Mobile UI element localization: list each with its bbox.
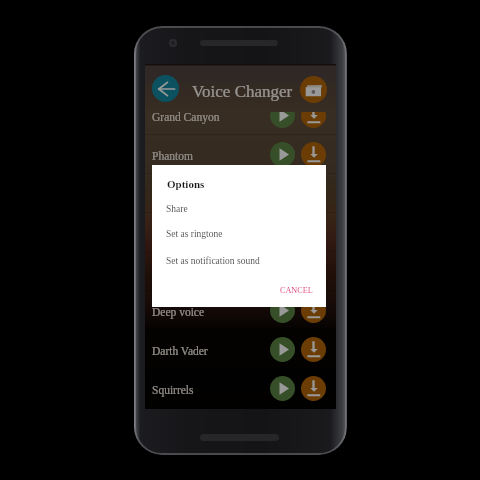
staticText: Set as notification sound xyxy=(166,256,260,267)
button[interactable]: Helium xyxy=(145,213,336,252)
button[interactable]: Set as notification sound xyxy=(152,253,326,269)
staticText: Options xyxy=(167,178,205,190)
button[interactable]: Squirrels xyxy=(145,369,336,408)
button[interactable]: Saved recordings xyxy=(300,76,327,103)
button[interactable]: Grand Canyon xyxy=(145,96,336,135)
staticText: Voice Changer xyxy=(192,82,293,101)
button[interactable]: Share xyxy=(152,201,326,217)
button[interactable]: Set as ringtone xyxy=(152,226,326,242)
staticText: Deep voice xyxy=(152,306,205,319)
staticText: Robot xyxy=(152,189,181,202)
button[interactable]: Robot xyxy=(145,174,336,213)
button[interactable]: Download Phantom xyxy=(301,142,326,167)
button[interactable]: Play Squirrels xyxy=(270,376,295,401)
staticText: Set as ringtone xyxy=(166,229,223,240)
button[interactable]: Download Deep voice xyxy=(301,298,326,323)
button[interactable]: Phantom xyxy=(145,135,336,174)
staticText: Helium xyxy=(152,228,187,241)
button[interactable]: Play Grand Canyon xyxy=(270,103,295,128)
staticText: CANCEL xyxy=(280,286,313,295)
button[interactable]: Play Darth Vader xyxy=(270,337,295,362)
button[interactable]: Darth Vader xyxy=(145,330,336,369)
button[interactable]: Download Darth Vader xyxy=(301,337,326,362)
button[interactable]: Play Deep voice xyxy=(270,298,295,323)
button[interactable]: Download Grand Canyon xyxy=(301,103,326,128)
staticText: Darth Vader xyxy=(152,345,208,358)
button[interactable]: CANCEL xyxy=(269,282,313,298)
staticText: Grand Canyon xyxy=(152,111,220,124)
staticText: Share xyxy=(166,204,188,215)
staticText: Squirrels xyxy=(152,384,194,397)
button[interactable]: Back xyxy=(152,75,179,102)
staticText: Phantom xyxy=(152,150,193,163)
button[interactable]: Download Squirrels xyxy=(301,376,326,401)
button[interactable]: Play Phantom xyxy=(270,142,295,167)
button[interactable]: Chipmunk xyxy=(145,252,336,291)
button[interactable]: Deep voice xyxy=(145,291,336,330)
